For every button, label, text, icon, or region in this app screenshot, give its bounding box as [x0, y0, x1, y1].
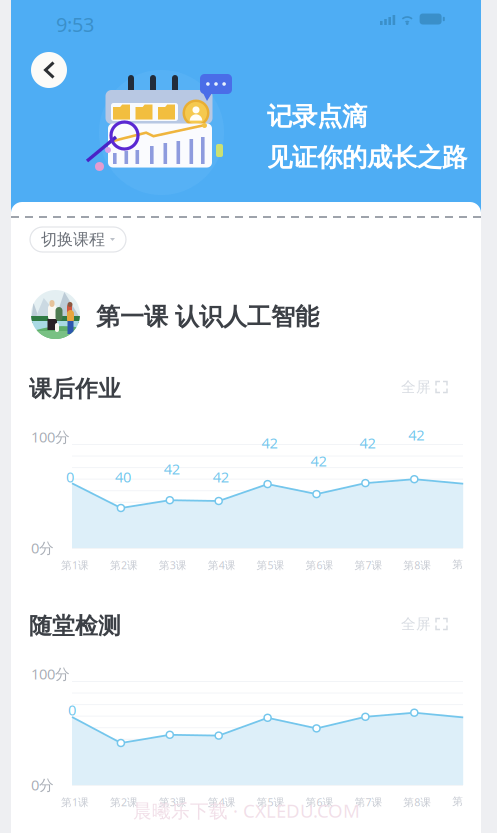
staticText: 随堂检测 [29, 612, 121, 640]
staticText: 第7课 [354, 795, 382, 809]
staticText: 第1课 [61, 558, 89, 572]
staticText: 0分 [31, 538, 54, 557]
button[interactable]: 全屏 [401, 378, 447, 396]
staticText: 第1课 [61, 795, 89, 809]
staticText: 第 [452, 558, 463, 571]
staticText: 切换课程 [41, 230, 105, 249]
staticText: 第5课 [257, 558, 285, 572]
button[interactable]: Back [27, 48, 71, 92]
staticText: 全屏 [401, 615, 431, 633]
staticText: 晨曦乐下载 · CXLEDU.COM [133, 798, 360, 823]
staticText: 第7课 [354, 558, 382, 572]
staticText: 第8课 [403, 558, 431, 572]
staticText: 第3课 [159, 795, 187, 809]
staticText: 第3课 [159, 558, 187, 572]
staticText: 42 [359, 433, 375, 452]
button[interactable]: 全屏 [401, 615, 447, 633]
staticText: 第8课 [403, 795, 431, 809]
staticText: 第 [452, 795, 463, 808]
staticText: 第6课 [305, 795, 333, 809]
staticText: 全屏 [401, 378, 431, 396]
staticText: 第4课 [208, 795, 236, 809]
staticText: 课后作业 [29, 375, 121, 403]
staticText: 42 [213, 467, 229, 486]
staticText: 0 [68, 700, 76, 719]
staticText: 记录点滴 [267, 101, 367, 132]
staticText: 42 [408, 425, 424, 444]
staticText: 42 [262, 433, 278, 452]
staticText: 9:53 [56, 11, 94, 38]
staticText: 第2课 [110, 558, 138, 572]
staticText: 第4课 [208, 558, 236, 572]
staticText: 第5课 [257, 795, 285, 809]
staticText: 42 [164, 459, 180, 478]
staticText: 100分 [31, 427, 70, 446]
staticText: 第一课 认识人工智能 [96, 302, 319, 331]
button[interactable]: 切换课程 [30, 227, 126, 252]
staticText: 0 [66, 467, 74, 486]
staticText: 40 [115, 467, 131, 486]
staticText: 0分 [31, 775, 54, 794]
staticText: 100分 [31, 664, 70, 683]
staticText: 第6课 [305, 558, 333, 572]
staticText: 第2课 [110, 795, 138, 809]
staticText: 42 [310, 451, 326, 470]
staticText: 见证你的成长之路 [267, 142, 467, 173]
